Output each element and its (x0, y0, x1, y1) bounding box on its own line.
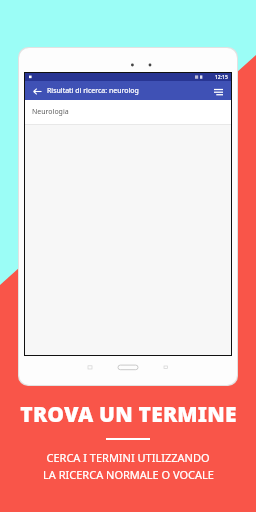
staticText: 12:15 (215, 74, 228, 81)
staticText: Risultati di ricerca: neurolog (47, 86, 211, 96)
button[interactable]: Menu (211, 84, 225, 98)
staticText: LA RICERCA NORMALE O VOCALE (43, 467, 214, 482)
button[interactable]: Neurologia (25, 100, 231, 124)
staticText: Neurologia (32, 107, 69, 117)
staticText: CERCA I TERMINI UTILIZZANDO (46, 450, 210, 465)
button[interactable]: Back (30, 84, 44, 98)
staticText: TROVA UN TERMINE (20, 400, 237, 429)
